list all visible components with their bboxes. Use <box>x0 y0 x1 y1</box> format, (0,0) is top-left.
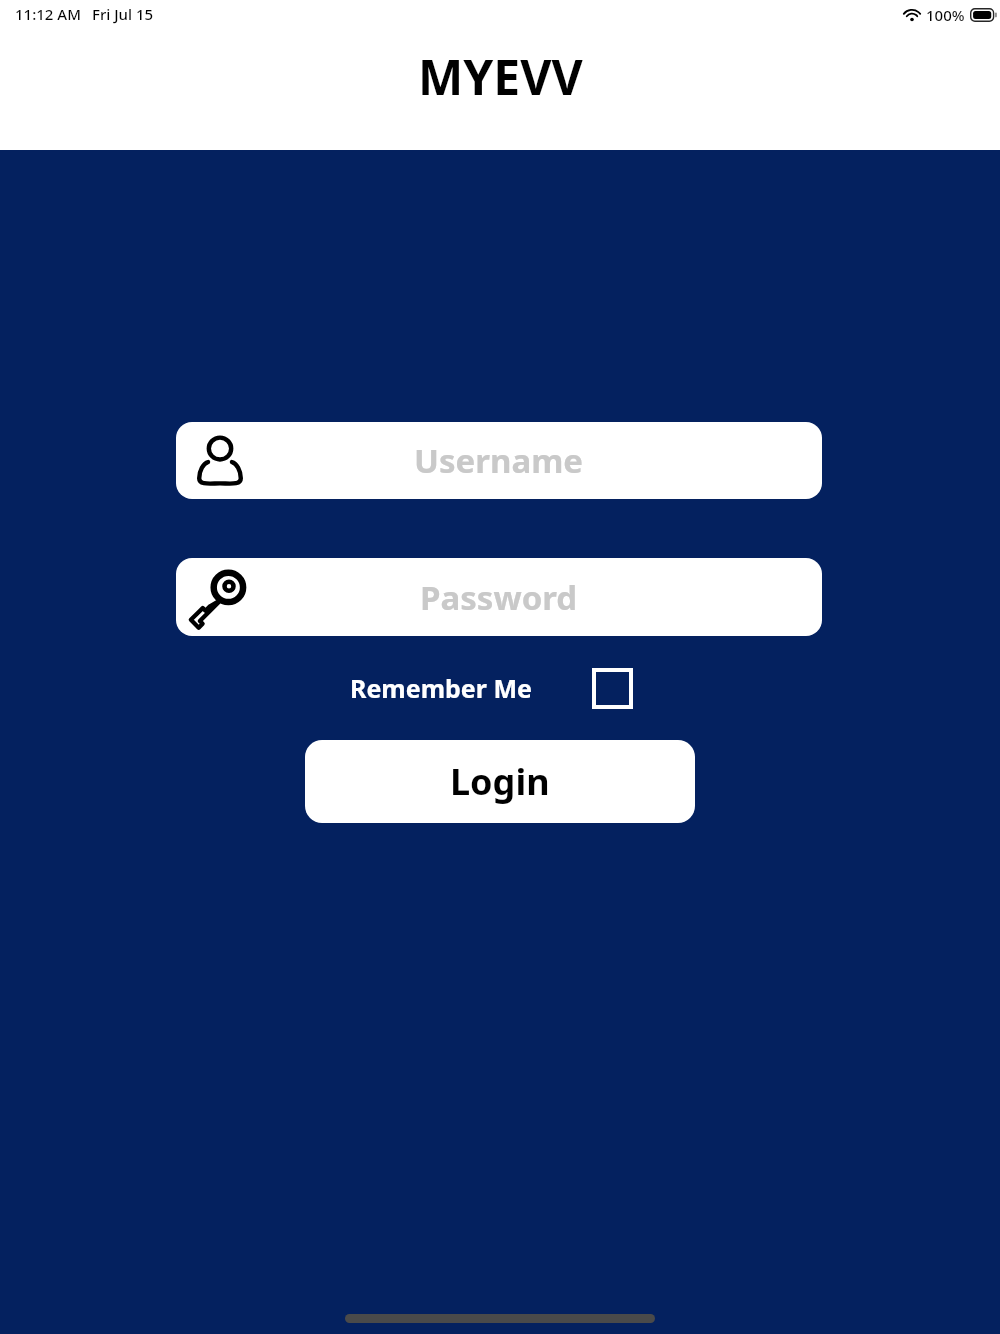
button[interactable]: Username <box>176 422 822 499</box>
staticText: MYEVV <box>418 44 583 109</box>
staticText: Password <box>420 575 578 620</box>
staticText: Remember Me <box>350 671 532 705</box>
staticText: Username <box>414 438 584 483</box>
staticText: Fri Jul 15 <box>92 4 154 24</box>
button[interactable]: Password <box>176 558 822 636</box>
other: Remember Me checkbox <box>592 668 633 709</box>
staticText: 100% <box>926 5 965 25</box>
button[interactable]: Login <box>305 740 695 823</box>
button[interactable]: Remember Me <box>350 660 633 716</box>
staticText: Login <box>450 757 550 806</box>
staticText: 11:12 AM <box>15 4 81 24</box>
